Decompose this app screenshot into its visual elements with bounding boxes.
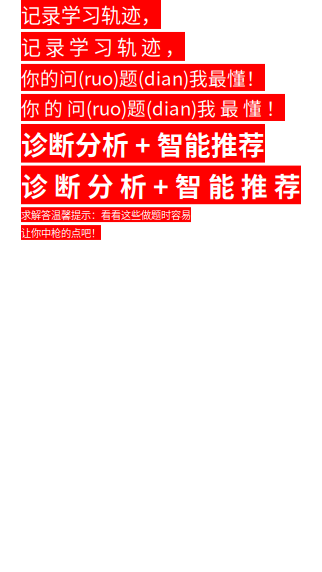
staticText: 记录学习轨迹， (21, 0, 161, 29)
staticText: 求解答温馨提示：看看这些做题时容易 (21, 207, 191, 222)
staticText: 你 的 问(ruo)题(dian)我 最 懂 ！ (21, 94, 285, 121)
staticText: 让你中枪的点吧！ (21, 225, 101, 240)
staticText: 诊 断 分 析 + 智 能 推 荐 (21, 166, 301, 204)
staticText: 你的问(ruo)题(dian)我最懂！ (21, 64, 265, 91)
staticText: 诊断分析 + 智能推荐 (21, 124, 265, 163)
staticText: 记 录 学 习 轨 迹 ， (21, 32, 185, 61)
